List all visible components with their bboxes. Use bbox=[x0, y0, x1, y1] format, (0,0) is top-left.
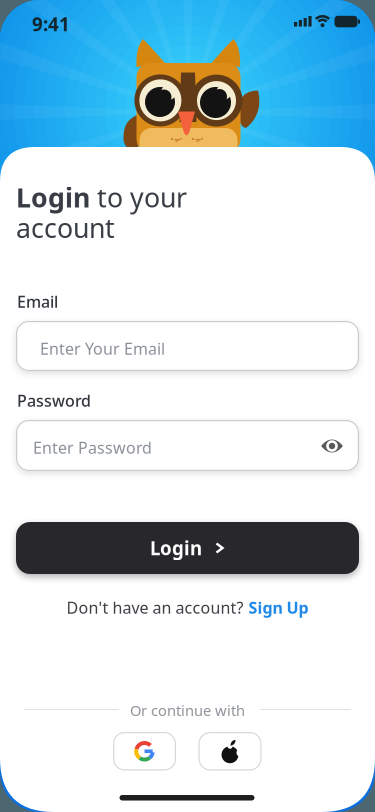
button[interactable]: Email bbox=[16, 321, 359, 371]
staticText: account bbox=[16, 210, 115, 245]
staticText: Sign Up bbox=[248, 597, 308, 618]
staticText: Don't have an account? bbox=[66, 597, 243, 618]
staticText: Login bbox=[150, 536, 202, 560]
button[interactable]: Continue with Google bbox=[113, 732, 176, 770]
button[interactable]: Sign Up bbox=[248, 597, 308, 618]
staticText: Or continue with bbox=[130, 700, 245, 720]
staticText: Email bbox=[17, 291, 58, 312]
button[interactable]: Continue with Apple bbox=[198, 732, 261, 770]
staticText: 9:41 bbox=[32, 11, 70, 36]
button[interactable]: Show password bbox=[315, 429, 349, 463]
staticText: Enter Password bbox=[33, 437, 152, 458]
button[interactable]: Login bbox=[16, 522, 359, 574]
staticText: Enter Your Email bbox=[40, 338, 165, 359]
button[interactable]: Password bbox=[16, 420, 359, 471]
staticText: Login to your bbox=[16, 179, 187, 215]
staticText: Password bbox=[17, 390, 91, 411]
